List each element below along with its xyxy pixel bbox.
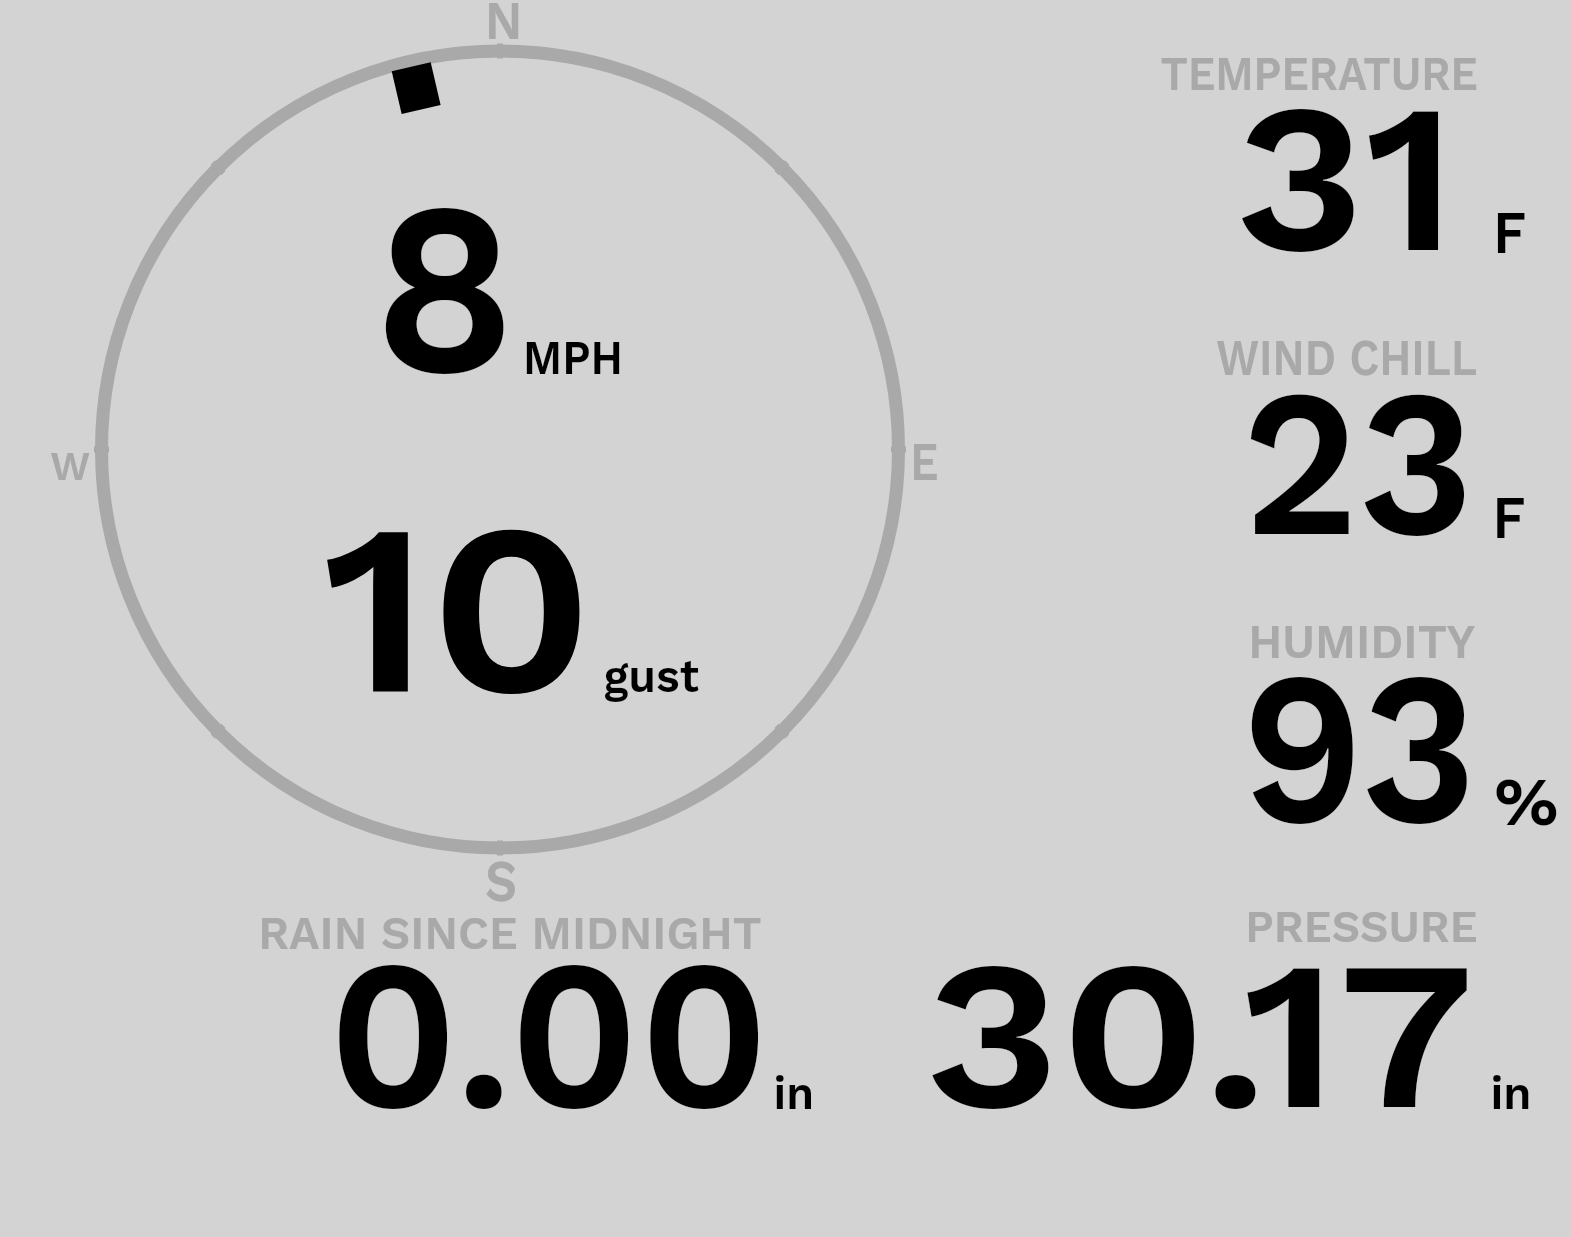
button[interactable]: Rain since midnight 0.00 inches bbox=[230, 885, 850, 1135]
button[interactable]: Temperature 31 degrees Fahrenheit bbox=[1140, 30, 1570, 280]
button[interactable]: Humidity 93 percent bbox=[1140, 600, 1570, 850]
button[interactable]: Wind 8 MPH, gusting 10 MPH, from the nor… bbox=[95, 44, 905, 854]
button[interactable]: Wind chill 23 degrees Fahrenheit bbox=[1140, 315, 1570, 565]
button[interactable]: Pressure 30.17 inches bbox=[880, 885, 1570, 1135]
